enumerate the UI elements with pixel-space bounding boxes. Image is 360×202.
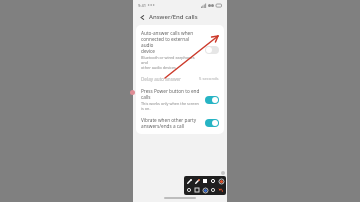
button[interactable]: Highlighter [193,177,201,185]
button[interactable]: Vibrate when other party answers or ends… [205,119,219,127]
button[interactable]: Close toolbar [221,171,225,175]
staticText: Bluetooth or wired earphones and other a… [141,55,202,70]
button[interactable]: Palette [201,186,209,194]
staticText: Auto-answer calls when connected to exte… [141,30,202,54]
button[interactable]: Auto-answer calls when connected to exte… [136,27,224,73]
button[interactable]: Press Power button to end calls [205,96,219,104]
staticText: This works only when the screen is on. [141,101,202,111]
button[interactable]: Eraser [201,177,209,185]
staticText: Vibrate when other party answers/ends a … [141,117,197,129]
button[interactable]: Settings [185,186,193,194]
staticText: 5 seconds [199,76,219,82]
button[interactable]: Shape [209,177,217,185]
button[interactable]: Vibrate when other party answers/ends a … [136,114,224,132]
button[interactable]: Pen [185,177,193,185]
button[interactable]: Back [137,12,147,22]
staticText: 9:41 [138,3,146,8]
button[interactable]: Press Power button to end calls [136,85,224,114]
staticText: Answer/End calls [149,13,198,21]
button[interactable]: Color red [217,177,225,185]
button[interactable]: Stamp [209,186,217,194]
button[interactable]: Auto-answer calls [205,46,219,54]
button[interactable]: Crop [193,186,201,194]
staticText: Press Power button to end calls [141,88,202,100]
button[interactable]: Undo [217,186,225,194]
staticText: Delay auto answer [141,76,182,82]
button[interactable]: Delay auto answer [136,73,224,85]
